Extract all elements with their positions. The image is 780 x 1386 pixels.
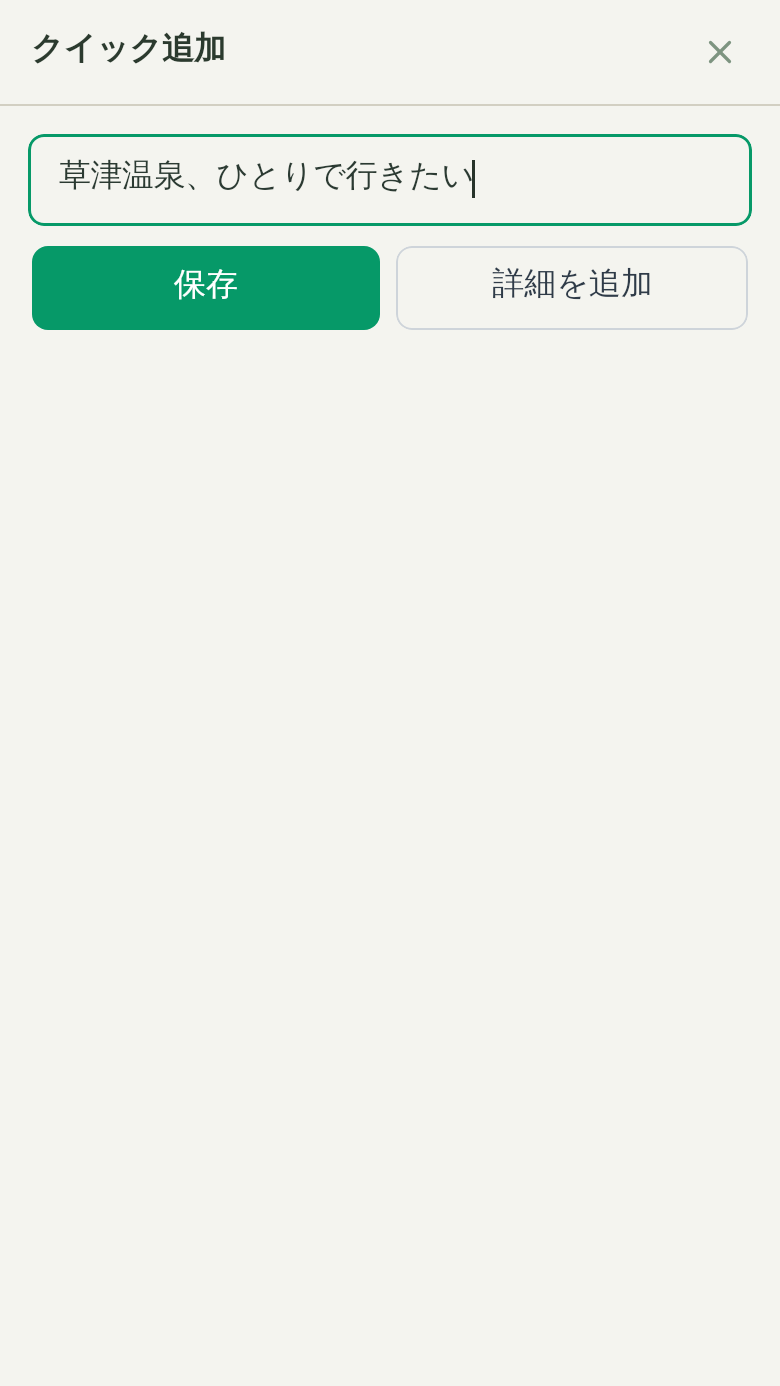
button[interactable]: 草津温泉、ひとりで行きたい [28, 134, 752, 226]
staticText: 保存 [174, 264, 238, 304]
staticText: 草津温泉、ひとりで行きたい [59, 155, 474, 195]
staticText: クイック追加 [31, 28, 226, 68]
button[interactable]: 閉じる [696, 28, 744, 76]
button[interactable]: 保存 [32, 246, 380, 330]
staticText: 詳細を追加 [492, 263, 653, 303]
button[interactable]: 詳細を追加 [396, 246, 748, 330]
